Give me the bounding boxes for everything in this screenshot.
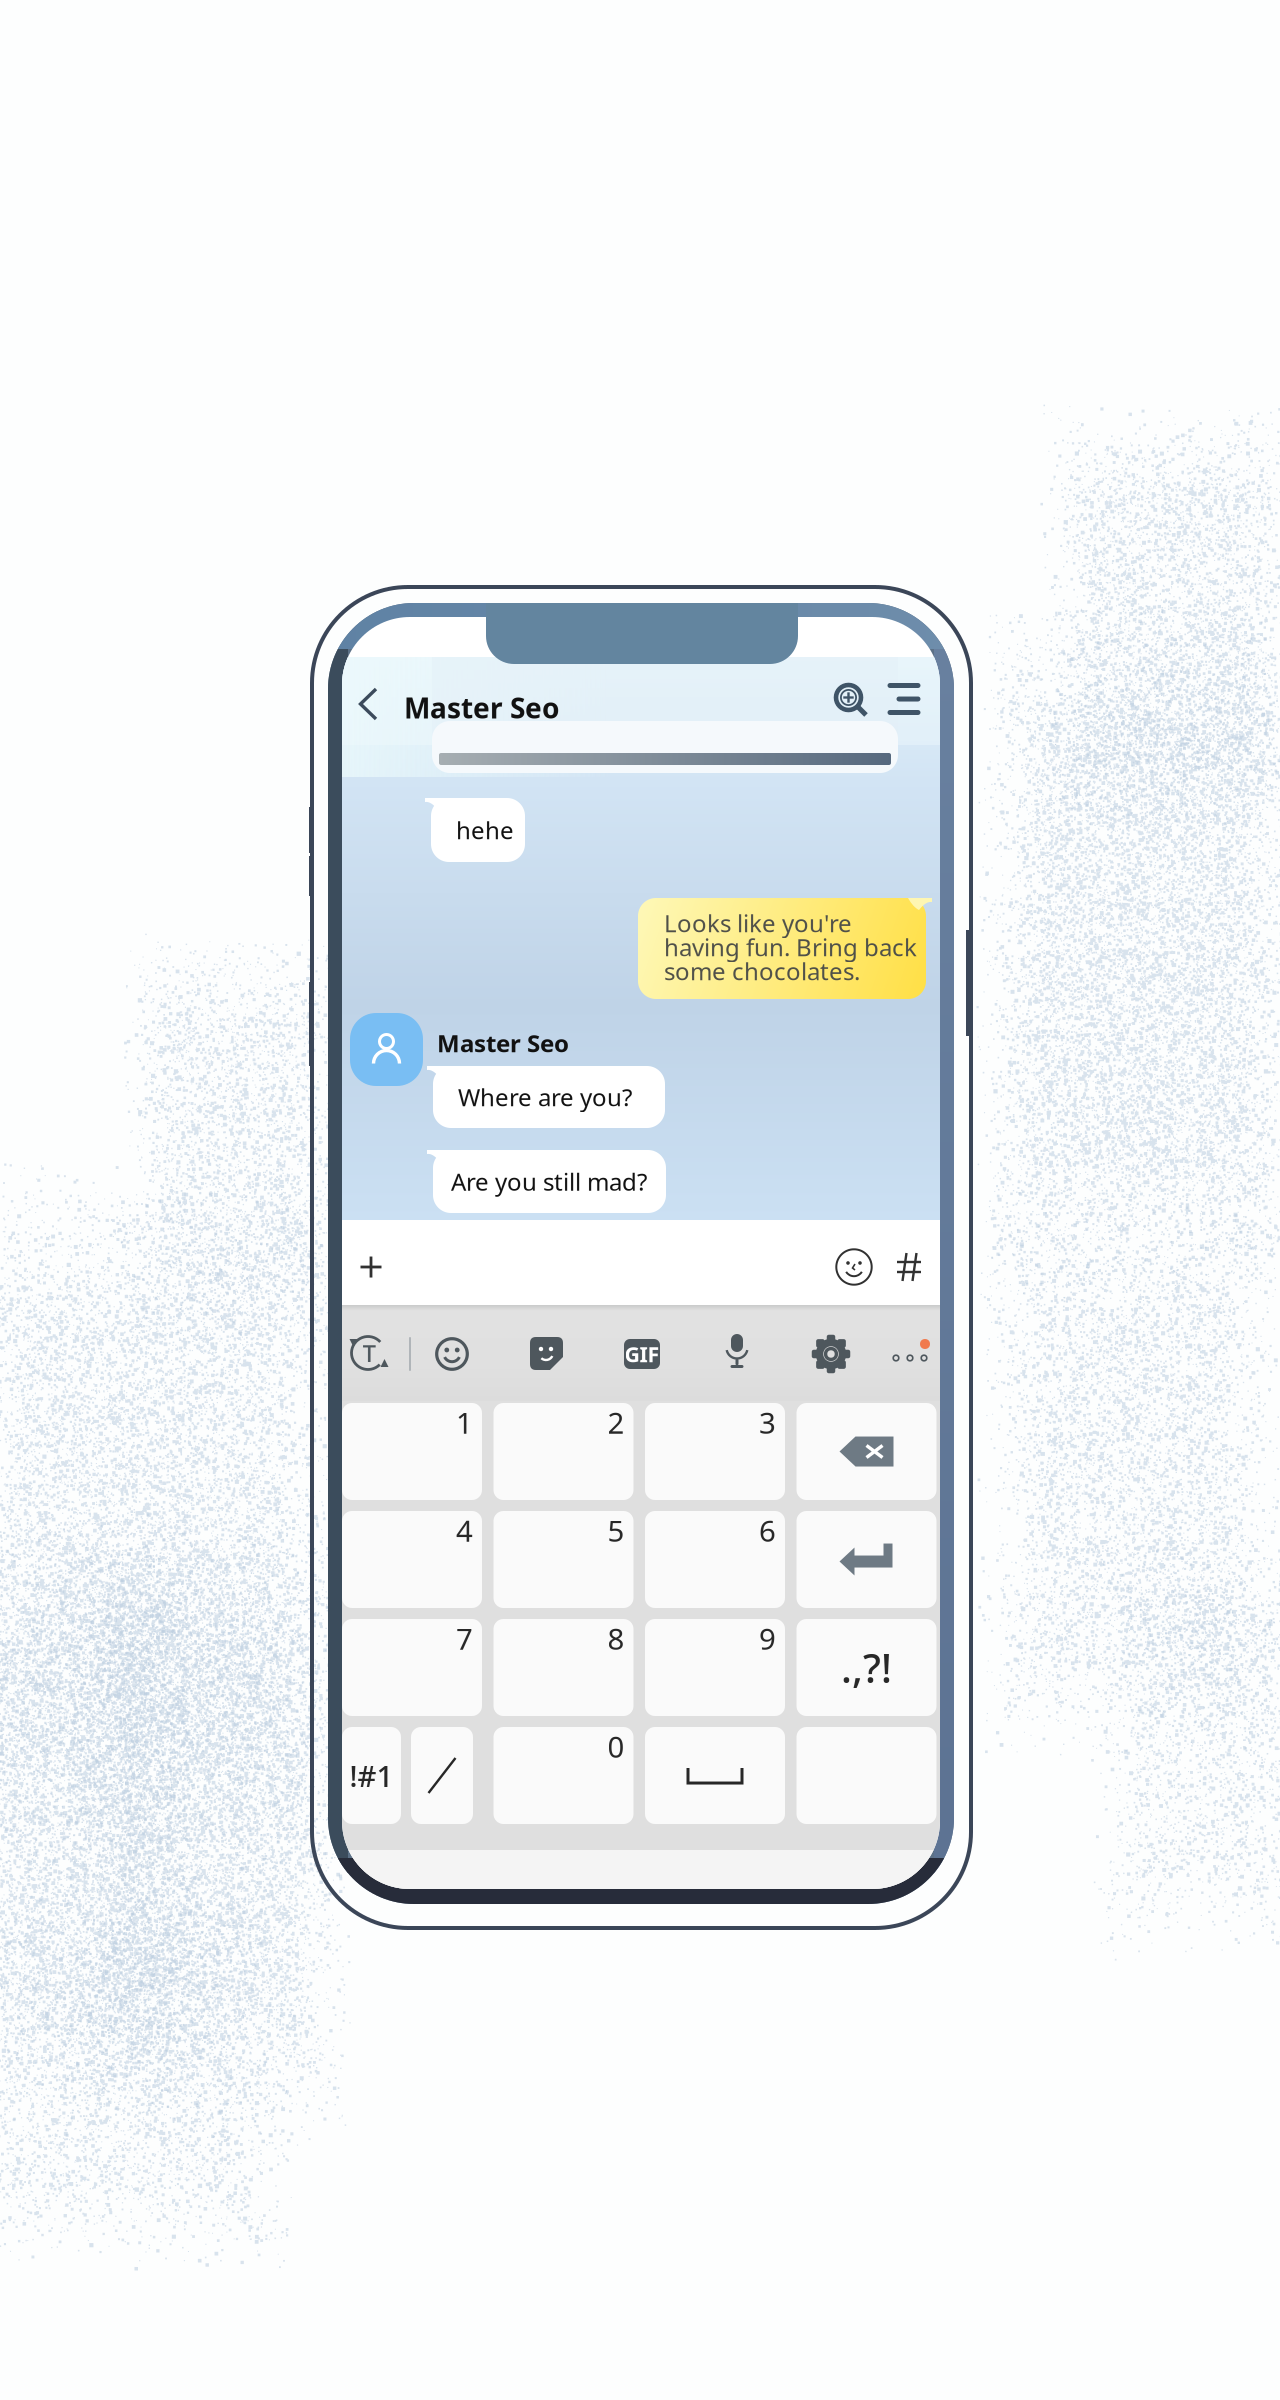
button[interactable]: 0 xyxy=(493,1727,633,1824)
staticText: 6 xyxy=(759,1511,776,1550)
staticText: some chocolates. xyxy=(664,955,860,987)
staticText: having fun. Bring back xyxy=(664,931,917,963)
button[interactable]: Emoji xyxy=(827,1240,881,1294)
staticText: 5 xyxy=(607,1511,624,1550)
button[interactable]: Back xyxy=(342,678,394,730)
button[interactable]: Shortcuts xyxy=(882,1240,936,1294)
staticText: 0 xyxy=(607,1727,624,1766)
button[interactable]: 2 xyxy=(493,1403,633,1500)
staticText: 2 xyxy=(607,1403,624,1442)
button[interactable]: Slash xyxy=(411,1727,473,1824)
staticText: Looks like you're xyxy=(664,907,852,939)
staticText: 8 xyxy=(607,1619,624,1658)
staticText: .,?! xyxy=(841,1641,892,1694)
button[interactable]: .,?! xyxy=(796,1619,936,1716)
button[interactable]: Settings xyxy=(803,1326,859,1382)
staticText: hehe xyxy=(456,814,514,846)
staticText: Are you still mad? xyxy=(451,1165,647,1197)
staticText: GIF xyxy=(624,1340,659,1368)
button[interactable]: GIF xyxy=(614,1326,670,1382)
button[interactable]: Backspace xyxy=(796,1403,936,1500)
button[interactable]: Emoji xyxy=(424,1326,480,1382)
button[interactable]: Translate xyxy=(341,1326,397,1382)
button[interactable]: Return xyxy=(796,1511,936,1608)
staticText: Master Seo xyxy=(404,689,560,726)
button[interactable]: 5 xyxy=(493,1511,633,1608)
staticText: 4 xyxy=(456,1511,473,1550)
button[interactable]: 7 xyxy=(342,1619,482,1716)
staticText: 1 xyxy=(456,1403,473,1442)
staticText: !#1 xyxy=(349,1756,393,1795)
button[interactable]: 8 xyxy=(493,1619,633,1716)
button[interactable]: Stickers xyxy=(519,1326,575,1382)
button[interactable]: 3 xyxy=(645,1403,785,1500)
button[interactable]: 6 xyxy=(645,1511,785,1608)
staticText: 7 xyxy=(456,1619,473,1658)
button[interactable]: Voice input xyxy=(709,1324,765,1380)
button[interactable]: 4 xyxy=(342,1511,482,1608)
staticText: T xyxy=(362,1337,375,1369)
button[interactable]: !#1 xyxy=(342,1727,401,1824)
staticText: 9 xyxy=(759,1619,776,1658)
staticText: 3 xyxy=(759,1403,776,1442)
button[interactable]: Space xyxy=(645,1727,785,1824)
button[interactable]: 1 xyxy=(342,1403,482,1500)
staticText: Where are you? xyxy=(458,1081,632,1113)
staticText: Master Seo xyxy=(437,1027,569,1059)
button[interactable]: Search xyxy=(825,674,877,726)
button[interactable]: Menu xyxy=(878,673,930,725)
button[interactable]: 9 xyxy=(645,1619,785,1716)
button[interactable]: More xyxy=(884,1326,940,1382)
button[interactable]: Attach xyxy=(344,1240,398,1294)
